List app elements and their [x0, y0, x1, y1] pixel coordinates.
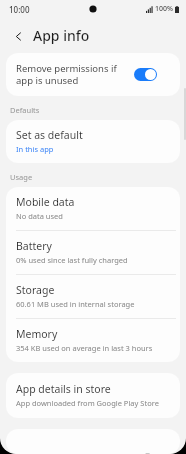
staticText: 0% used since last fully charged [16, 255, 128, 265]
staticText: 100% [155, 4, 173, 14]
staticText: In this app [16, 144, 54, 154]
staticText: 354 KB used on average in last 3 hours [16, 343, 153, 353]
staticText: Defaults [10, 105, 40, 115]
button[interactable]: Battery [6, 231, 180, 274]
staticText: App details in store [16, 382, 111, 396]
button[interactable]: Memory [6, 319, 180, 362]
staticText: 60.61 MB used in internal storage [16, 299, 135, 309]
button[interactable]: Storage [6, 275, 180, 318]
staticText: Storage [16, 283, 55, 297]
button[interactable]: App details in store [6, 373, 180, 418]
staticText: 10:00 [9, 4, 30, 15]
button[interactable]: Set as default [6, 120, 180, 163]
staticText: No data used [16, 211, 63, 221]
button[interactable]: Remove permissions toggle [134, 68, 157, 81]
staticText: Battery [16, 239, 52, 253]
button[interactable]: Back [9, 27, 27, 45]
staticText: Remove permissions if app is unused [16, 62, 128, 87]
staticText: Set as default [16, 128, 83, 142]
staticText: Mobile data [16, 195, 75, 209]
staticText: Usage [10, 172, 33, 182]
button[interactable]: Remove permissions if app is unused [6, 53, 180, 96]
staticText: Memory [16, 327, 58, 341]
staticText: App downloaded from Google Play Store [16, 398, 159, 408]
staticText: App info [33, 26, 90, 45]
button[interactable]: Mobile data [6, 187, 180, 230]
